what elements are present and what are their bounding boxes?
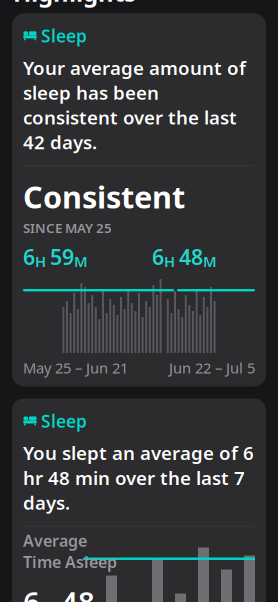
staticText: M xyxy=(203,251,217,271)
staticText: SINCE MAY 25 xyxy=(23,219,112,237)
staticText: min xyxy=(95,600,124,602)
staticText: M xyxy=(74,251,88,271)
staticText: Your average amount of sleep has been co… xyxy=(23,55,246,155)
staticText: 48 xyxy=(179,243,203,271)
button[interactable]: Sleep xyxy=(12,398,266,602)
staticText: Time Asleep xyxy=(23,551,117,572)
button[interactable]: Sleep xyxy=(12,13,266,386)
staticText: 6 xyxy=(23,243,35,271)
staticText: 48 xyxy=(61,582,95,602)
staticText: 6 xyxy=(152,243,164,271)
staticText: Sleep xyxy=(41,24,87,47)
staticText: You slept an average of 6 hr 48 min over… xyxy=(23,440,254,515)
staticText: Average xyxy=(23,530,87,551)
staticText: 6 xyxy=(23,582,40,602)
staticText: 59 xyxy=(50,243,74,271)
staticText: Consistent xyxy=(23,176,185,217)
staticText: H xyxy=(164,251,179,271)
staticText: May 25 – Jun 21 xyxy=(23,358,128,377)
staticText: H xyxy=(35,251,50,271)
staticText: Jun 22 – Jul 5 xyxy=(169,358,255,377)
staticText: Highlights xyxy=(13,0,136,8)
staticText: Sleep xyxy=(41,409,87,432)
